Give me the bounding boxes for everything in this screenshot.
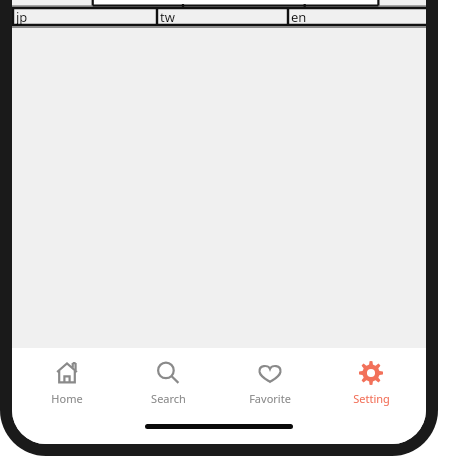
button[interactable]: tw: [156, 7, 287, 26]
button[interactable]: Setting: [325, 354, 417, 406]
staticText: Home: [51, 391, 83, 406]
staticText: Setting: [353, 391, 390, 406]
button[interactable]: en: [287, 7, 426, 26]
staticText: en: [291, 8, 307, 26]
button[interactable]: Favorite: [224, 354, 316, 406]
staticText: tw: [160, 8, 175, 26]
button[interactable]: jp: [12, 7, 156, 26]
button[interactable]: Home: [21, 354, 113, 406]
staticText: Search: [151, 391, 186, 406]
button[interactable]: Search: [122, 354, 214, 406]
staticText: Favorite: [249, 391, 291, 406]
staticText: jp: [16, 8, 28, 26]
